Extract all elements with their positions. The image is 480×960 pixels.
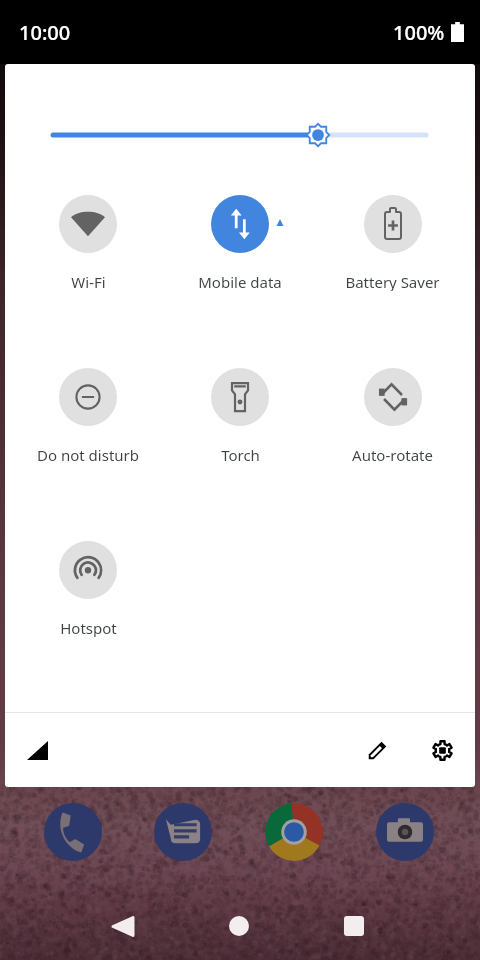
button[interactable]: Torch bbox=[164, 368, 316, 464]
staticText: 10:00 bbox=[19, 19, 71, 46]
button[interactable]: Recents bbox=[318, 890, 390, 960]
staticText: 100% bbox=[393, 19, 445, 46]
button[interactable]: Mobile data bbox=[164, 195, 316, 291]
button[interactable]: Camera bbox=[376, 803, 434, 861]
button[interactable]: Chrome bbox=[265, 803, 323, 861]
button[interactable]: Messages bbox=[154, 803, 212, 861]
button[interactable]: Battery Saver bbox=[316, 195, 468, 291]
button[interactable]: Phone bbox=[44, 803, 102, 861]
button[interactable]: Hotspot bbox=[12, 541, 164, 637]
button[interactable]: Brightness bbox=[5, 119, 475, 151]
staticText: Do not disturb bbox=[37, 445, 139, 464]
staticText: Hotspot bbox=[60, 618, 117, 637]
button[interactable]: Back bbox=[87, 890, 159, 960]
staticText: Wi-Fi bbox=[71, 272, 106, 291]
button[interactable]: Signal bbox=[13, 726, 61, 774]
button[interactable]: Do not disturb bbox=[12, 368, 164, 464]
button[interactable]: Wi-Fi bbox=[12, 195, 164, 291]
button[interactable]: Home bbox=[203, 890, 275, 960]
button[interactable]: Auto-rotate bbox=[316, 368, 468, 464]
button[interactable]: Edit bbox=[353, 726, 401, 774]
button[interactable]: Settings bbox=[418, 726, 466, 774]
staticText: Torch bbox=[221, 445, 260, 464]
staticText: Auto-rotate bbox=[352, 445, 433, 464]
staticText: Mobile data bbox=[198, 272, 282, 291]
staticText: Battery Saver bbox=[345, 272, 440, 291]
